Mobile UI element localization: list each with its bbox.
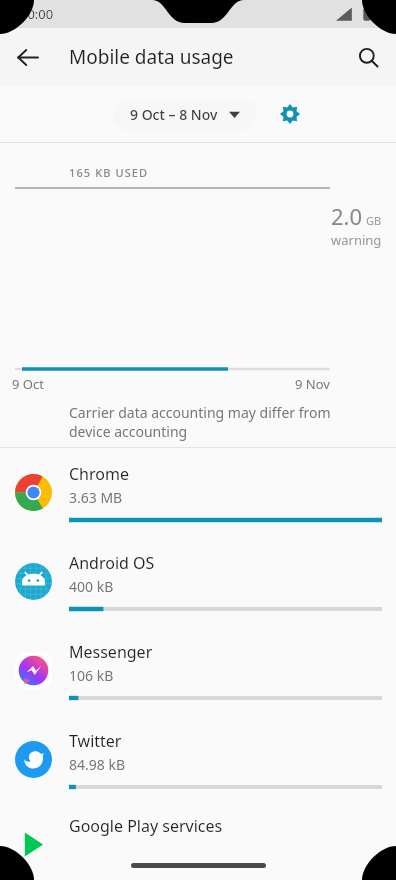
button[interactable]: Back [7, 37, 47, 77]
button[interactable]: Settings [273, 97, 307, 131]
staticText: 400 kB [69, 577, 114, 596]
staticText: Android OS [69, 552, 155, 574]
staticText: 165 KB USED [69, 165, 149, 180]
button[interactable]: Messenger [0, 626, 396, 715]
staticText: Twitter [69, 730, 122, 752]
staticText: Google Play services [69, 815, 223, 837]
button[interactable]: Twitter [0, 715, 396, 804]
button[interactable]: 9 Oct – 8 Nov [113, 98, 257, 131]
staticText: 2.0 [331, 201, 363, 231]
staticText: 106 kB [69, 666, 114, 685]
staticText: Mobile data usage [69, 44, 234, 70]
button[interactable]: Chrome [0, 448, 396, 537]
staticText: 3.63 MB [69, 488, 123, 507]
staticText: 9 Oct – 8 Nov [130, 105, 218, 124]
staticText: warning [331, 231, 382, 249]
staticText: Messenger [69, 641, 153, 663]
staticText: Chrome [69, 463, 129, 485]
button[interactable]: Google Play services [0, 804, 396, 864]
staticText: Carrier data accounting may differ from … [69, 403, 372, 447]
button[interactable]: Android OS [0, 537, 396, 626]
staticText: 9 Oct [12, 375, 44, 393]
button[interactable]: Search [348, 37, 388, 77]
staticText: 84.98 kB [69, 755, 125, 774]
staticText: 10:00 [20, 5, 54, 23]
staticText: GB [366, 213, 382, 228]
staticText: 9 Nov [295, 375, 330, 393]
